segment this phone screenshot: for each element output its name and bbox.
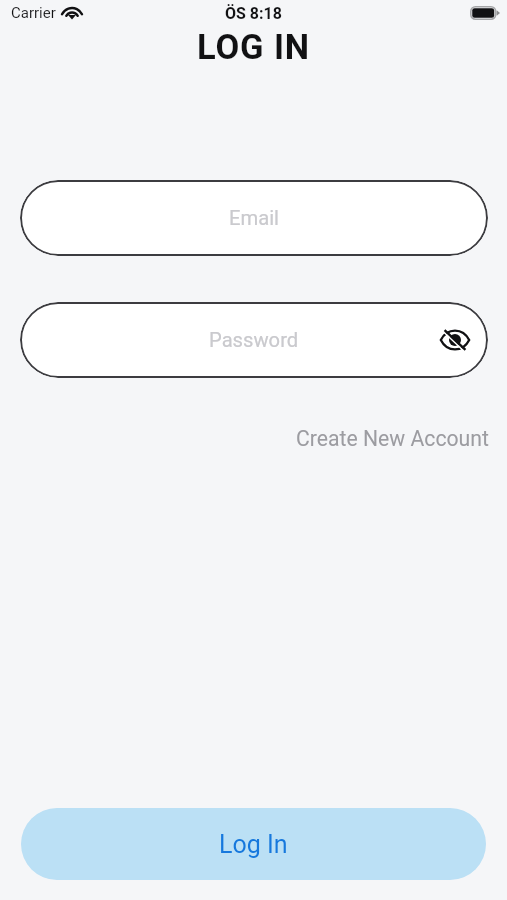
staticText: Create New Account (296, 426, 489, 451)
button[interactable]: Show password (432, 317, 478, 363)
staticText: LOG IN (197, 27, 311, 67)
button[interactable]: Password (20, 302, 488, 378)
button[interactable]: Email (20, 180, 488, 256)
staticText: Log In (219, 830, 288, 859)
button[interactable]: Create New Account (296, 422, 507, 455)
button[interactable]: Log In (21, 808, 486, 880)
staticText: Email (229, 206, 279, 230)
staticText: ÖS 8:18 (225, 4, 282, 23)
staticText: Carrier (11, 4, 56, 22)
staticText: Password (209, 328, 299, 352)
